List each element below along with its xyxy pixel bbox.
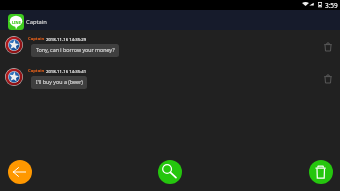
button[interactable]: Back [8, 160, 32, 184]
staticText: Captain [26, 18, 47, 26]
staticText: 3:59 [325, 1, 338, 10]
button[interactable]: Search [158, 160, 182, 184]
staticText: Captain [28, 36, 45, 42]
button[interactable]: Tony, can i borrow your money? [31, 44, 119, 57]
button[interactable]: I'll buy you a (beer) [31, 76, 87, 89]
button[interactable]: Delete message [323, 74, 333, 84]
button[interactable]: Delete all [309, 160, 333, 184]
staticText: Tony, can i borrow your money? [36, 46, 115, 53]
staticText: 2018-11-16 14:35:41 [46, 68, 87, 74]
button[interactable]: Delete message [323, 42, 333, 52]
staticText: Captain [28, 68, 45, 74]
staticText: LINE [12, 20, 21, 25]
staticText: I'll buy you a (beer) [36, 78, 83, 85]
staticText: 2018-11-16 14:35:29 [46, 36, 87, 42]
button[interactable]: LINE [8, 14, 24, 30]
